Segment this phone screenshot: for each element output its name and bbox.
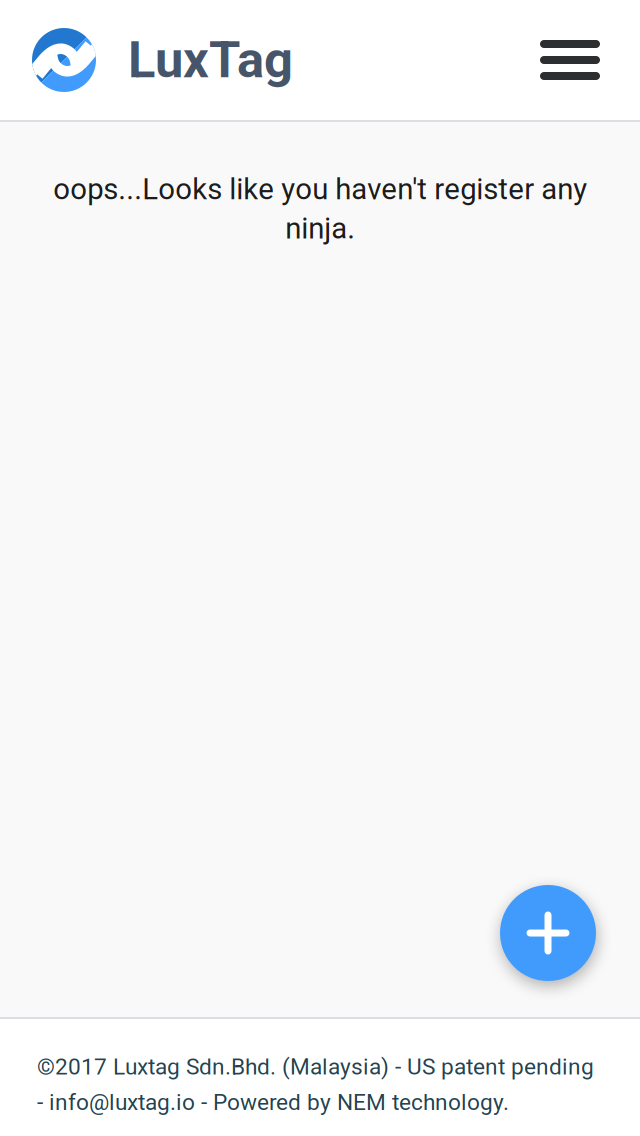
button[interactable]: LuxTag home	[32, 14, 293, 106]
staticText: LuxTag	[128, 30, 293, 90]
staticText: oops...Looks like you haven't register a…	[53, 172, 587, 246]
staticText: - info@luxtag.io - Powered by NEM techno…	[37, 1089, 509, 1116]
button[interactable]: Open menu	[529, 23, 611, 97]
staticText: ©2017 Luxtag Sdn.Bhd. (Malaysia) - US pa…	[37, 1053, 594, 1080]
button[interactable]: Register new ninja	[500, 885, 596, 981]
